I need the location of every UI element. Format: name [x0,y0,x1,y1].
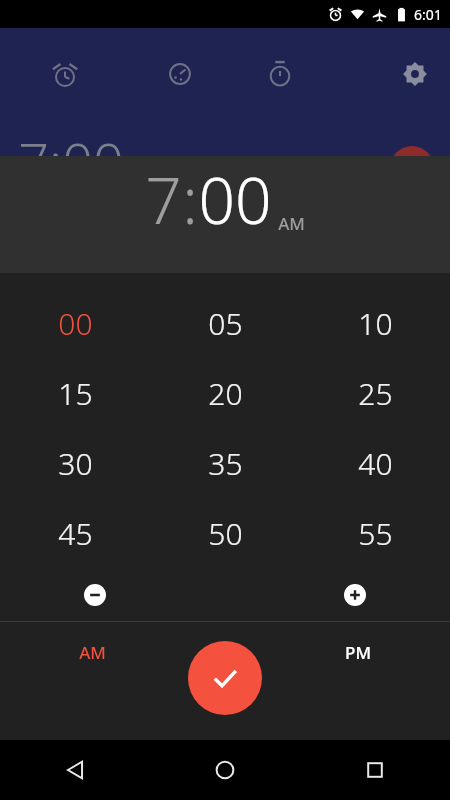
staticText: AM [79,641,106,664]
button[interactable]: Alarm [0,48,130,100]
button[interactable]: AM [0,622,185,683]
staticText: 00 [198,156,272,243]
button[interactable]: 25 [300,358,450,428]
button[interactable]: Settings [380,48,450,100]
button[interactable]: 00 [198,156,272,243]
staticText: 7 [145,156,182,243]
staticText: 35 [208,443,243,484]
staticText: 45 [58,513,93,554]
staticText: 6:01 [414,5,442,24]
staticText: 7:00 [18,124,124,198]
staticText: 40 [358,443,393,484]
button[interactable]: Clock [130,48,230,100]
staticText: 50 [208,513,243,554]
button[interactable]: Done [188,641,262,715]
button[interactable]: Decrease hour [73,573,117,617]
staticText: 15 [58,373,93,414]
other: Settings [402,61,428,87]
button[interactable]: 05 [150,288,300,358]
button[interactable]: 20 [150,358,300,428]
button[interactable]: Increase hour [333,573,377,617]
button[interactable]: 7 [145,156,182,243]
button[interactable]: Home [150,740,300,800]
staticText: : [182,156,198,243]
button[interactable]: 40 [300,428,450,498]
button[interactable]: 45 [0,498,150,568]
button[interactable]: 30 [0,428,150,498]
staticText: 00 [58,303,93,344]
button[interactable]: Recents [300,740,450,800]
button[interactable]: 50 [150,498,300,568]
staticText: 25 [358,373,393,414]
other: Timer [267,61,293,87]
staticText: 10 [358,303,393,344]
staticText: 20 [208,373,243,414]
button[interactable]: Back [0,740,150,800]
staticText: 30 [58,443,93,484]
button[interactable]: 35 [150,428,300,498]
button[interactable]: 55 [300,498,450,568]
button[interactable]: Timer [230,48,330,100]
button[interactable]: PM [265,622,450,683]
staticText: 55 [358,513,393,554]
staticText: PM [345,641,371,664]
button[interactable]: 00 [0,288,150,358]
other: Clock [167,61,193,87]
other: Alarm [50,59,80,89]
button[interactable]: 15 [0,358,150,428]
staticText: AM [278,212,305,235]
staticText: 05 [208,303,243,344]
button[interactable]: 10 [300,288,450,358]
